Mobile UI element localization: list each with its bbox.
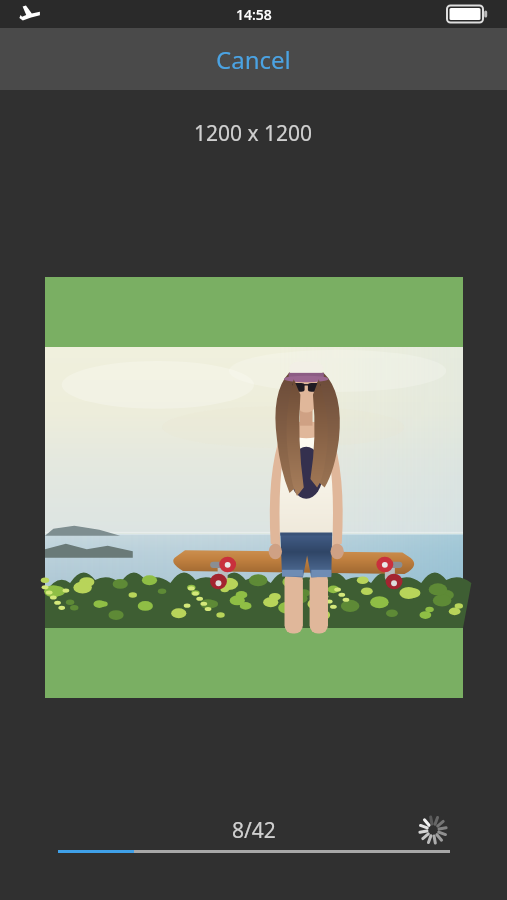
staticText: 1200 x 1200: [194, 119, 313, 148]
button[interactable]: [45, 277, 463, 698]
button[interactable]: Cancel: [196, 35, 311, 84]
staticText: 14:58: [236, 5, 272, 24]
other: Loading: [419, 816, 447, 844]
staticText: 8/42: [232, 816, 276, 845]
staticText: Cancel: [216, 43, 291, 76]
